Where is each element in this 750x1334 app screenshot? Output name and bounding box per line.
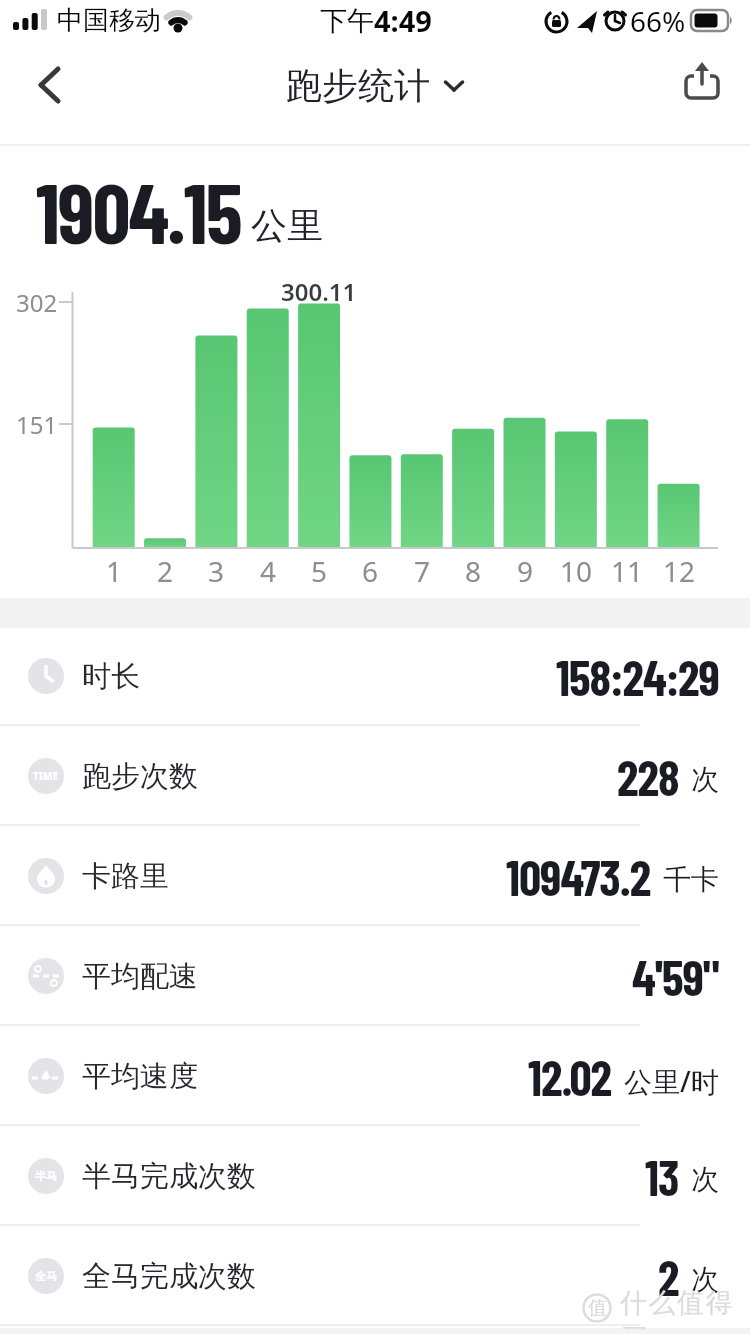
staticText: 8	[465, 552, 482, 582]
button[interactable]: 时长	[0, 626, 750, 726]
staticText: 3	[208, 552, 225, 582]
button[interactable]	[672, 54, 734, 130]
staticText: 6	[362, 552, 379, 582]
staticText: 次	[691, 762, 719, 797]
staticText: 158:24:29	[556, 647, 719, 706]
staticText: 109473.2	[506, 847, 651, 906]
staticText: 千卡	[663, 862, 719, 897]
staticText: 跑步次数	[82, 758, 198, 795]
staticText: 公里	[251, 203, 323, 248]
button[interactable]: 卡路里	[0, 826, 750, 926]
staticText: 300.11	[281, 275, 357, 303]
staticText: 全马	[35, 1269, 57, 1283]
staticText: 7	[414, 552, 431, 582]
button[interactable]: 全马	[0, 1226, 750, 1326]
staticText: 跑步统计	[286, 63, 430, 108]
staticText: 半马	[35, 1169, 57, 1183]
button[interactable]: 平均配速	[0, 926, 750, 1026]
staticText: 151	[16, 408, 58, 436]
staticText: 卡路里	[82, 858, 169, 895]
staticText: 4	[260, 552, 277, 582]
staticText: 半马完成次数	[82, 1158, 256, 1195]
staticText: 12.02	[528, 1047, 612, 1106]
staticText: 11	[611, 552, 644, 582]
staticText: 平均配速	[82, 958, 198, 995]
button[interactable]: 跑步统计	[286, 63, 464, 108]
staticText: 2	[157, 552, 174, 582]
staticText: 12	[663, 552, 696, 582]
staticText: 66%	[630, 2, 686, 40]
staticText: 值	[588, 1296, 606, 1320]
staticText: 1	[106, 552, 123, 582]
staticText: 时长	[82, 658, 140, 695]
staticText: 2	[658, 1247, 679, 1306]
staticText: 1904.15	[36, 160, 241, 261]
staticText: 次	[691, 1162, 719, 1197]
staticText: 4:49	[374, 1, 432, 40]
staticText: TIME	[33, 769, 59, 783]
staticText: 5	[311, 552, 328, 582]
staticText: 次	[691, 1262, 719, 1297]
staticText: 中国移动	[57, 4, 161, 37]
staticText: 13	[645, 1147, 679, 1206]
button[interactable]: 半马	[0, 1126, 750, 1226]
staticText: 公里/时	[624, 1062, 719, 1100]
staticText: 全马完成次数	[82, 1258, 256, 1295]
button[interactable]: 平均速度	[0, 1026, 750, 1126]
staticText: 10	[560, 552, 593, 582]
staticText: 9	[517, 552, 534, 582]
staticText: 302	[16, 286, 58, 314]
staticText: 下午	[320, 4, 374, 38]
button[interactable]	[20, 54, 76, 130]
staticText: 4'59"	[632, 947, 719, 1006]
staticText: 228	[617, 747, 679, 806]
staticText: 什么值得买	[620, 1286, 748, 1330]
staticText: 平均速度	[82, 1058, 198, 1095]
button[interactable]: TIME	[0, 726, 750, 826]
